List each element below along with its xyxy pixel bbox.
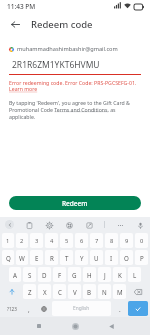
staticText: J [104, 271, 106, 279]
button[interactable]: . [113, 301, 126, 316]
button[interactable]: E [30, 250, 43, 265]
button[interactable]: 4 [45, 233, 58, 248]
button[interactable]: C [53, 284, 66, 299]
staticText: 5 [65, 237, 69, 245]
staticText: , [28, 305, 30, 313]
staticText: R [50, 254, 54, 262]
button[interactable]: D [38, 267, 51, 282]
button[interactable]: S [23, 267, 36, 282]
button[interactable]: B [83, 284, 96, 299]
button[interactable]: Back [7, 16, 23, 32]
staticText: B [87, 288, 92, 296]
button[interactable]: U [90, 250, 103, 265]
staticText: 6 [80, 237, 84, 245]
button[interactable]: 1 [2, 233, 14, 248]
staticText: 7 [95, 237, 99, 245]
button[interactable]: A [9, 267, 21, 282]
button[interactable]: 6 [75, 233, 88, 248]
button[interactable]: P [135, 250, 148, 265]
button[interactable]: O [120, 250, 133, 265]
button[interactable]: T [60, 250, 73, 265]
button[interactable]: W [16, 250, 28, 265]
staticText: 3 [35, 237, 39, 245]
staticText: H [87, 271, 92, 279]
button[interactable]: F [53, 267, 66, 282]
staticText: . [119, 305, 121, 313]
staticText: F [58, 271, 62, 279]
staticText: 9 [125, 237, 129, 245]
staticText: Redeem [62, 199, 88, 208]
button[interactable]: V [68, 284, 81, 299]
button[interactable]: Shift [2, 284, 21, 299]
staticText: V [73, 288, 77, 296]
staticText: 2 [20, 237, 24, 245]
button[interactable]: Redeem [9, 196, 141, 210]
staticText: 8 [110, 237, 114, 245]
button[interactable]: 8 [105, 233, 118, 248]
button[interactable]: 7 [90, 233, 103, 248]
button[interactable]: I [105, 250, 118, 265]
button[interactable]: Change language [37, 301, 50, 316]
button[interactable]: M [113, 284, 126, 299]
staticText: G [72, 271, 77, 279]
staticText: P [140, 254, 144, 262]
staticText: D [42, 271, 47, 279]
staticText: Z [28, 288, 32, 296]
button[interactable]: Y [75, 250, 88, 265]
button[interactable]: Settings [44, 220, 54, 230]
button[interactable]: R [45, 250, 58, 265]
button[interactable]: Q [2, 250, 14, 265]
button[interactable]: Enter [128, 301, 148, 316]
staticText: K [118, 271, 122, 279]
staticText: Error redeeming code. Error Code: PRS-PG… [9, 79, 141, 93]
staticText: E [35, 254, 39, 262]
button[interactable]: Voice input [135, 220, 145, 230]
staticText: 4 [50, 237, 54, 245]
staticText: By tapping 'Redeem', you agree to the Gi… [9, 99, 141, 120]
staticText: N [102, 288, 107, 296]
button[interactable]: H [83, 267, 96, 282]
button[interactable]: Back [100, 317, 122, 335]
button[interactable]: Translate [84, 220, 94, 230]
staticText: ?123 [7, 306, 17, 312]
button[interactable]: More options [115, 220, 125, 230]
button[interactable]: Home [64, 317, 86, 335]
staticText: X [43, 288, 47, 296]
staticText: S [28, 271, 32, 279]
staticText: M [117, 288, 123, 296]
button[interactable]: Recents [28, 317, 50, 335]
button[interactable]: English [52, 301, 111, 316]
button[interactable]: 9 [120, 233, 133, 248]
staticText: English [73, 305, 90, 312]
staticText: A [13, 271, 17, 279]
staticText: Q [6, 254, 11, 262]
button[interactable]: L [128, 267, 141, 282]
staticText: muhammadhashimbashir@gmail.com [17, 45, 118, 53]
button[interactable]: G [68, 267, 81, 282]
staticText: 1 [6, 237, 10, 245]
button[interactable]: K [113, 267, 126, 282]
button[interactable]: Stickers [64, 220, 74, 230]
button[interactable]: 2 [16, 233, 28, 248]
staticText: L [133, 271, 137, 279]
button[interactable]: 0 [135, 233, 148, 248]
button[interactable]: Z [23, 284, 36, 299]
staticText: 0 [140, 237, 144, 245]
button[interactable]: Clipboard [24, 220, 34, 230]
staticText: 11:43 PM [7, 2, 36, 11]
button[interactable]: ?123 [2, 301, 21, 316]
button[interactable]: Collapse toolbar [5, 220, 14, 229]
button[interactable]: N [98, 284, 111, 299]
button[interactable]: J [98, 267, 111, 282]
button[interactable]: 3 [30, 233, 43, 248]
button[interactable]: Backspace [128, 284, 148, 299]
staticText: U [94, 254, 99, 262]
staticText: O [124, 254, 129, 262]
button[interactable]: , [23, 301, 35, 316]
staticText: W [19, 254, 25, 262]
staticText: Y [80, 254, 84, 262]
staticText: C [58, 288, 62, 296]
staticText: 2R1R6ZM1YKT6HVMU [12, 59, 100, 71]
button[interactable]: 5 [60, 233, 73, 248]
button[interactable]: X [38, 284, 51, 299]
